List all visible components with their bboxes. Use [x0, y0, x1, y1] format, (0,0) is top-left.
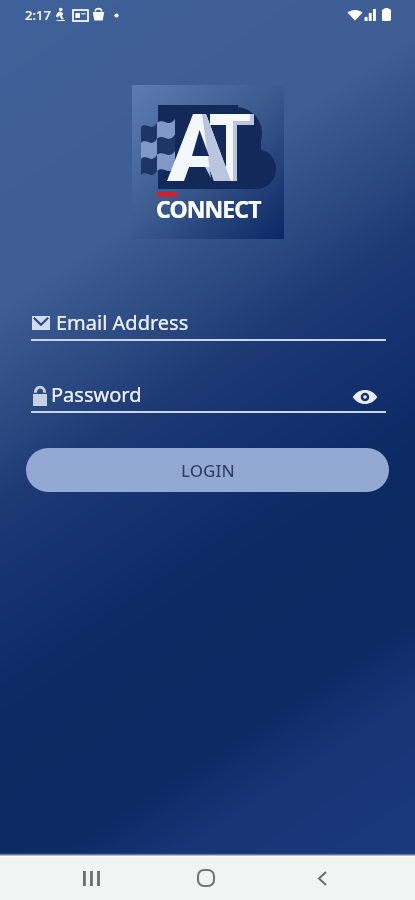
staticText: LOGIN	[181, 459, 235, 482]
button[interactable]: LOGIN	[26, 448, 389, 492]
button[interactable]: Password	[0, 380, 415, 420]
staticText: 2:17	[25, 6, 51, 24]
staticText: Email Address	[56, 309, 189, 336]
button[interactable]: Home	[182, 859, 230, 897]
staticText: Password	[51, 381, 142, 408]
button[interactable]: Show password	[348, 383, 381, 410]
button[interactable]: Recent apps	[67, 860, 115, 896]
staticText: CONNECT	[156, 193, 261, 224]
button[interactable]: Back	[298, 861, 346, 895]
button[interactable]: Email Address	[0, 308, 415, 348]
